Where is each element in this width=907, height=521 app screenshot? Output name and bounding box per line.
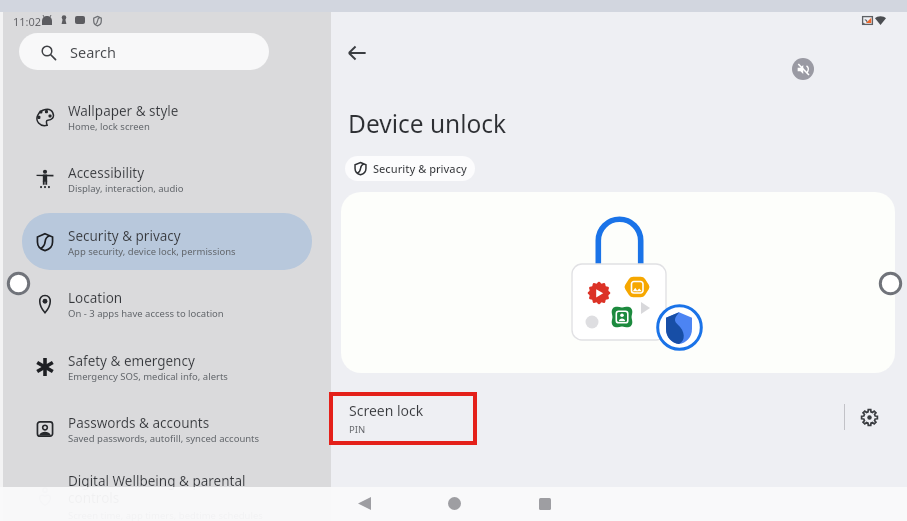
staticText: Saved passwords, autofill, synced accoun… — [68, 432, 260, 445]
button[interactable]: Back — [341, 37, 373, 69]
button[interactable]: Accessibility — [21, 148, 313, 210]
staticText: Wallpaper & style — [68, 102, 179, 120]
button[interactable]: Wallpaper & style — [21, 86, 313, 148]
button[interactable]: Screen lock — [331, 392, 844, 444]
button[interactable]: Security & privacy — [21, 211, 313, 273]
staticText: 11:02 — [13, 14, 42, 29]
staticText: Device unlock — [348, 107, 507, 140]
staticText: Safety & emergency — [68, 352, 195, 370]
button[interactable]: Digital Wellbeing & parental controls — [21, 459, 313, 521]
button[interactable]: Recents — [539, 498, 551, 510]
button[interactable]: Back — [358, 497, 371, 510]
button[interactable]: Passwords & accounts — [21, 398, 313, 460]
button[interactable]: Safety & emergency — [21, 336, 313, 398]
button[interactable]: Search — [19, 33, 269, 70]
staticText: App security, device lock, permissions — [68, 245, 236, 258]
staticText: On - 3 apps have access to location — [68, 307, 224, 320]
button[interactable]: Screen lock settings — [849, 397, 889, 437]
staticText: Digital Wellbeing & parental controls — [68, 472, 268, 507]
staticText: Accessibility — [68, 164, 145, 182]
button[interactable]: Security & privacy — [345, 156, 475, 181]
button[interactable]: Muted — [792, 58, 814, 80]
staticText: Security & privacy — [373, 161, 467, 176]
staticText: PIN — [349, 423, 366, 436]
staticText: Display, interaction, audio — [68, 182, 184, 195]
staticText: Passwords & accounts — [68, 414, 210, 432]
staticText: Home, lock screen — [68, 120, 150, 133]
staticText: Emergency SOS, medical info, alerts — [68, 370, 228, 383]
staticText: Security & privacy — [68, 227, 181, 245]
button[interactable]: Location — [21, 273, 313, 335]
button[interactable]: Home — [448, 497, 461, 510]
staticText: Search — [70, 42, 116, 62]
staticText: Location — [68, 289, 123, 307]
staticText: Screen lock — [349, 401, 424, 420]
